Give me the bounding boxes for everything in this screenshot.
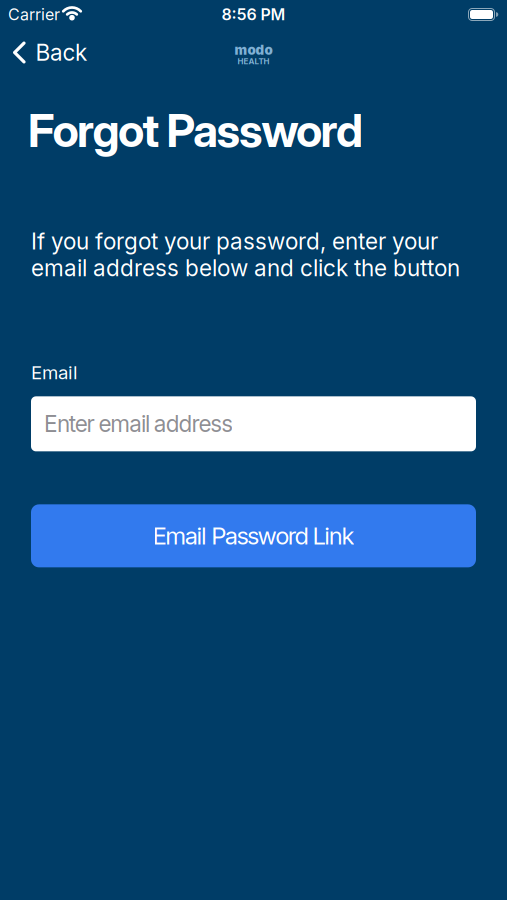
staticText: Back	[35, 39, 87, 66]
staticText: modo	[234, 42, 272, 58]
button[interactable]: Enter email address	[31, 396, 476, 451]
staticText: If you forgot your password, enter your …	[31, 228, 460, 281]
button[interactable]: Back	[13, 39, 87, 66]
staticText: Carrier	[8, 5, 60, 24]
staticText: Email	[31, 361, 78, 383]
button[interactable]: Email Password Link	[31, 504, 476, 567]
staticText: Enter email address	[44, 410, 233, 437]
staticText: HEALTH	[237, 57, 269, 66]
staticText: 8:56 PM	[221, 5, 285, 24]
staticText: Forgot Password	[28, 103, 363, 158]
staticText: Email Password Link	[153, 522, 354, 550]
